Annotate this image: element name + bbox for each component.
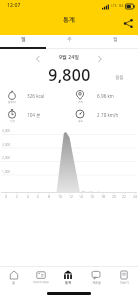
- staticText: 월: [113, 37, 118, 42]
- staticText: 16: [90, 195, 94, 198]
- button[interactable]: 주: [46, 32, 92, 46]
- staticText: 104 분: [27, 113, 41, 117]
- staticText: 걸음: [115, 75, 124, 80]
- staticText: 8: [48, 195, 50, 198]
- button[interactable]: [96, 55, 104, 63]
- staticText: 칼로리: [8, 101, 16, 104]
- staticText: 제휴몰: [92, 281, 101, 284]
- staticText: 일: [21, 37, 26, 42]
- staticText: 더보기: [120, 281, 129, 284]
- button[interactable]: [120, 16, 136, 32]
- staticText: 84: [119, 4, 124, 8]
- button[interactable]: 홈: [0, 267, 27, 292]
- staticText: 거리: [78, 101, 83, 104]
- staticText: 주: [67, 37, 72, 42]
- staticText: 2.78 km/h: [97, 113, 119, 117]
- staticText: 통계: [65, 281, 71, 284]
- button[interactable]: 제휴몰: [82, 267, 110, 292]
- staticText: 6.96 km: [97, 94, 114, 98]
- staticText: 10: [58, 195, 62, 198]
- staticText: 속도: [78, 120, 83, 123]
- staticText: 3,000: [2, 143, 11, 146]
- staticText: 326 kcal: [27, 94, 45, 98]
- button[interactable]: 일: [0, 32, 46, 46]
- staticText: 홈: [12, 281, 15, 284]
- button[interactable]: 더보기: [110, 267, 138, 292]
- staticText: 20: [112, 195, 116, 198]
- staticText: 24: [133, 195, 137, 198]
- staticText: 14: [79, 195, 83, 198]
- staticText: 4: [27, 195, 29, 198]
- button[interactable]: 월: [92, 32, 138, 46]
- staticText: 1,000: [2, 170, 11, 173]
- staticText: 마일리지교환권: [33, 281, 49, 283]
- staticText: 12: [69, 195, 73, 198]
- staticText: 18: [101, 195, 105, 198]
- staticText: 6: [37, 195, 39, 198]
- staticText: 시간: [10, 120, 15, 123]
- button[interactable]: 통계: [54, 267, 82, 292]
- staticText: 9월 24일: [59, 55, 79, 60]
- button[interactable]: 마일리지교환권: [27, 267, 54, 292]
- staticText: LTE: [111, 4, 117, 8]
- staticText: 22: [122, 195, 126, 198]
- staticText: 통계: [63, 17, 75, 23]
- staticText: 4,000: [2, 129, 11, 132]
- staticText: 2,000: [2, 156, 11, 159]
- staticText: 2: [16, 195, 18, 198]
- staticText: 12:07: [7, 3, 21, 8]
- staticText: 9,800: [48, 68, 91, 83]
- button[interactable]: [34, 55, 42, 63]
